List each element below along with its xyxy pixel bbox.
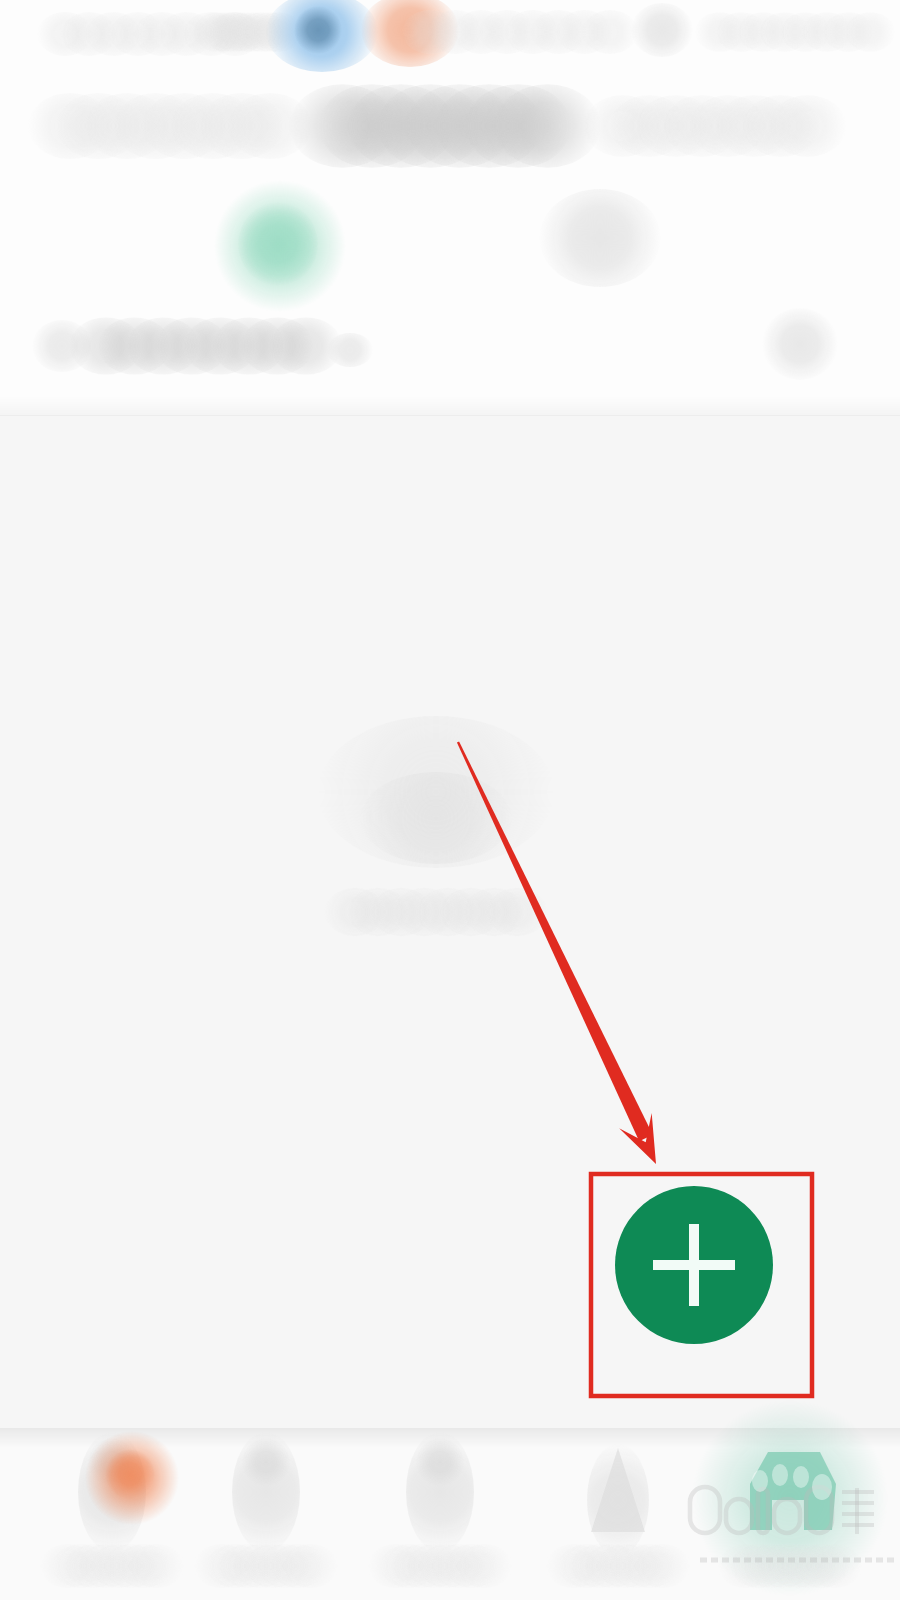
button[interactable]: Add bbox=[615, 1186, 773, 1344]
